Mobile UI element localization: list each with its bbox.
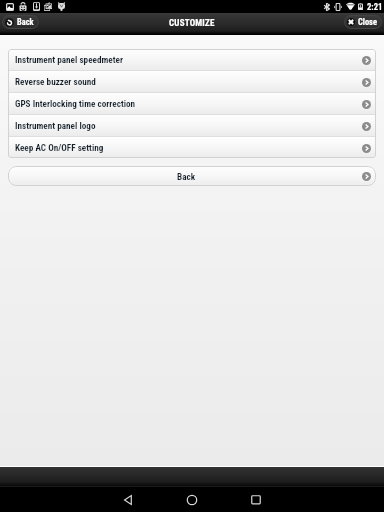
staticText: Close xyxy=(358,17,377,27)
staticText: 2:21 xyxy=(367,2,383,12)
staticText: GPS Interlocking time correction xyxy=(15,98,136,109)
button[interactable]: Reverse buzzer sound xyxy=(8,71,376,92)
staticText: Back xyxy=(17,17,34,27)
button[interactable]: Close xyxy=(344,15,382,29)
button[interactable]: Recents xyxy=(240,487,272,512)
staticText: Keep AC On/OFF setting xyxy=(15,142,104,153)
button[interactable]: Keep AC On/OFF setting xyxy=(8,137,376,158)
button[interactable]: GPS Interlocking time correction xyxy=(8,93,376,114)
button[interactable]: Back xyxy=(8,166,376,186)
staticText: Reverse buzzer sound xyxy=(15,76,96,87)
button[interactable]: Instrument panel logo xyxy=(8,115,376,136)
button[interactable]: Back xyxy=(112,487,144,512)
staticText: Instrument panel logo xyxy=(15,120,96,131)
staticText: CUSTOMIZE xyxy=(169,18,215,29)
button[interactable]: Instrument panel speedmeter xyxy=(8,49,376,70)
staticText: Back xyxy=(177,171,196,182)
button[interactable]: Back xyxy=(2,15,39,29)
button[interactable]: Home xyxy=(176,487,208,512)
staticText: Instrument panel speedmeter xyxy=(15,54,123,65)
